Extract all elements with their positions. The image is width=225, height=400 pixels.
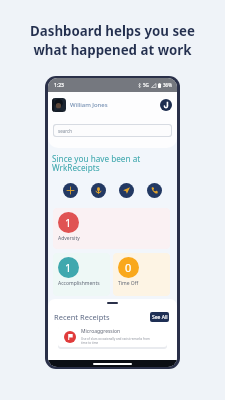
button[interactable]: App logo bbox=[160, 99, 172, 111]
button[interactable]: Record bbox=[91, 183, 106, 198]
staticText: 1 bbox=[65, 215, 72, 230]
button[interactable]: Send bbox=[119, 183, 134, 198]
staticText: search bbox=[58, 128, 72, 134]
staticText: Time Off bbox=[118, 280, 139, 287]
button[interactable]: search bbox=[54, 125, 171, 136]
staticText: William Jones bbox=[70, 101, 108, 109]
button[interactable]: Call bbox=[147, 183, 162, 198]
button[interactable]: See All bbox=[150, 312, 169, 322]
button[interactable]: Add bbox=[63, 183, 78, 198]
staticText: Since you have been at WrkReceipts bbox=[52, 153, 141, 174]
button[interactable]: 1 bbox=[53, 208, 170, 249]
staticText: what happened at work bbox=[33, 41, 192, 59]
staticText: 0 bbox=[125, 260, 132, 275]
staticText: Recent Receipts bbox=[54, 312, 110, 322]
staticText: Microaggression bbox=[81, 328, 121, 335]
staticText: 1:23 bbox=[54, 82, 64, 89]
staticText: 1 bbox=[65, 260, 72, 275]
staticText: Use of slurs occasionally and racist rem… bbox=[81, 337, 150, 345]
staticText: Dashboard helps you see bbox=[30, 22, 195, 40]
button[interactable]: 0 bbox=[113, 253, 170, 296]
staticText: See All bbox=[152, 314, 168, 321]
button[interactable]: Profile photo bbox=[52, 98, 66, 112]
button[interactable]: 1 bbox=[53, 253, 110, 296]
button[interactable]: Microaggression bbox=[58, 326, 167, 347]
staticText: 5G bbox=[143, 82, 149, 88]
staticText: Adversity bbox=[58, 235, 80, 242]
staticText: 36% bbox=[163, 82, 172, 88]
staticText: Accomplishments bbox=[58, 280, 100, 287]
